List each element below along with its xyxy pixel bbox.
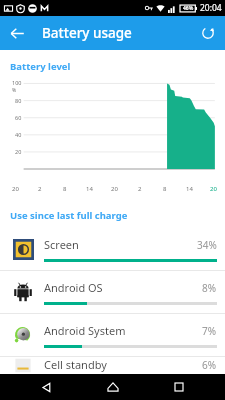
staticText: 20 [210, 185, 217, 193]
staticText: 46% [183, 5, 194, 12]
staticText: Android OS [44, 280, 202, 295]
staticText: 40 [15, 131, 22, 138]
staticText: 14 [86, 185, 93, 193]
button[interactable]: Android OS [0, 271, 225, 313]
staticText: 14 [186, 185, 193, 193]
staticText: Battery usage [42, 24, 132, 42]
staticText: 7% [202, 324, 217, 338]
staticText: 2 [138, 185, 142, 193]
button[interactable]: Back [0, 16, 34, 50]
button[interactable]: Home [93, 374, 133, 400]
staticText: Cell standby [44, 357, 202, 372]
button[interactable]: Android System [0, 314, 225, 356]
staticText: 20 [12, 185, 19, 193]
button[interactable]: Screen [0, 228, 225, 270]
staticText: 8% [202, 281, 217, 295]
staticText: 8 [163, 185, 167, 193]
staticText: 8 [63, 185, 67, 193]
button[interactable]: Refresh [191, 16, 225, 50]
staticText: Battery level [10, 60, 71, 73]
staticText: 34% [197, 238, 217, 252]
staticText: Android System [44, 323, 202, 338]
staticText: Use since last full charge [10, 209, 128, 222]
staticText: 6% [202, 358, 217, 372]
button[interactable]: Cell standby [0, 357, 225, 374]
staticText: 20:04 [200, 2, 222, 14]
staticText: 60 [15, 114, 22, 121]
button[interactable]: Recent apps [159, 374, 199, 400]
staticText: Screen [44, 237, 197, 252]
staticText: 2 [38, 185, 42, 193]
staticText: 20 [15, 148, 22, 155]
staticText: 20 [111, 185, 118, 193]
staticText: 80 [15, 97, 22, 104]
staticText: % [12, 87, 17, 94]
staticText: 100 [12, 79, 22, 86]
button[interactable]: Back [26, 374, 66, 400]
